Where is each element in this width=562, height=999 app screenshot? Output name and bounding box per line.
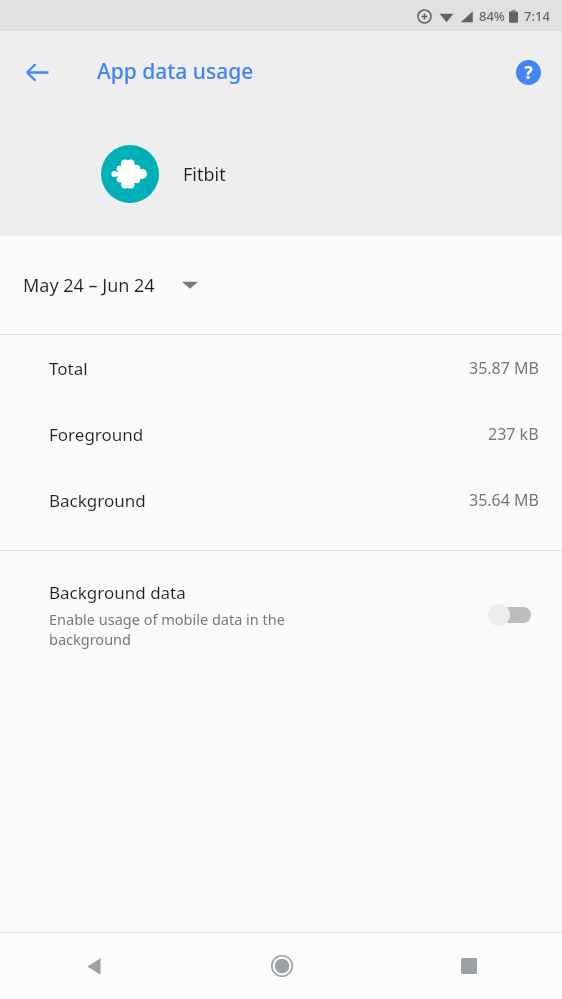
staticText: Fitbit	[183, 162, 226, 187]
button[interactable]: May 24 – Jun 24	[0, 236, 562, 334]
staticText: May 24 – Jun 24	[23, 273, 155, 298]
button[interactable]: Total	[0, 335, 562, 401]
staticText: ?	[524, 61, 533, 84]
staticText: 237 kB	[488, 423, 539, 445]
staticText: Background data	[49, 581, 186, 604]
button[interactable]: Home	[188, 933, 375, 999]
staticText: 7:14	[524, 7, 550, 25]
staticText: App data usage	[97, 57, 254, 86]
staticText: Background	[49, 489, 146, 512]
staticText: 35.64 MB	[469, 489, 539, 511]
button[interactable]: Background	[0, 467, 562, 533]
button[interactable]: Back	[0, 933, 188, 999]
staticText: Enable usage of mobile data in the backg…	[49, 609, 285, 649]
staticText: 84%	[479, 7, 505, 25]
button[interactable]: Foreground	[0, 401, 562, 467]
button[interactable]: Back	[11, 46, 63, 98]
staticText: 35.87 MB	[469, 357, 539, 379]
staticText: Total	[49, 357, 88, 380]
button[interactable]: Background data toggle	[487, 598, 539, 632]
staticText: Foreground	[49, 423, 144, 446]
button[interactable]: Background data	[0, 551, 562, 679]
button[interactable]: Help	[504, 48, 552, 96]
button[interactable]: Recent apps	[375, 933, 562, 999]
